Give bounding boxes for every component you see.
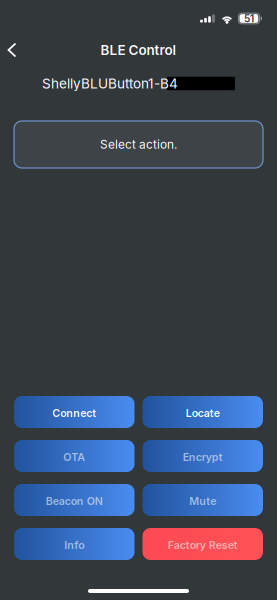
button[interactable]: Locate — [142, 396, 263, 428]
button[interactable]: Mute — [142, 484, 263, 516]
staticText: Locate — [186, 406, 220, 419]
button[interactable]: Back — [0, 35, 24, 65]
staticText: Mute — [189, 494, 216, 507]
staticText: Factory Reset — [168, 538, 238, 551]
staticText: Info — [64, 538, 84, 551]
staticText: Select action. — [100, 137, 177, 152]
staticText: Encrypt — [183, 450, 223, 463]
staticText: OTA — [63, 450, 85, 463]
staticText: Beacon ON — [46, 494, 103, 507]
button[interactable]: Info — [14, 528, 134, 560]
button[interactable]: Select action. — [14, 121, 263, 168]
staticText: BLE Control — [100, 42, 176, 58]
staticText: Connect — [52, 406, 96, 419]
button[interactable]: Connect — [14, 396, 134, 428]
button[interactable]: Encrypt — [142, 440, 263, 472]
button[interactable]: Factory Reset — [142, 528, 263, 560]
staticText: ShellyBLUButton1-B4 — [42, 75, 178, 92]
staticText: 51 — [244, 12, 254, 25]
button[interactable]: Beacon ON — [14, 484, 134, 516]
button[interactable]: OTA — [14, 440, 134, 472]
